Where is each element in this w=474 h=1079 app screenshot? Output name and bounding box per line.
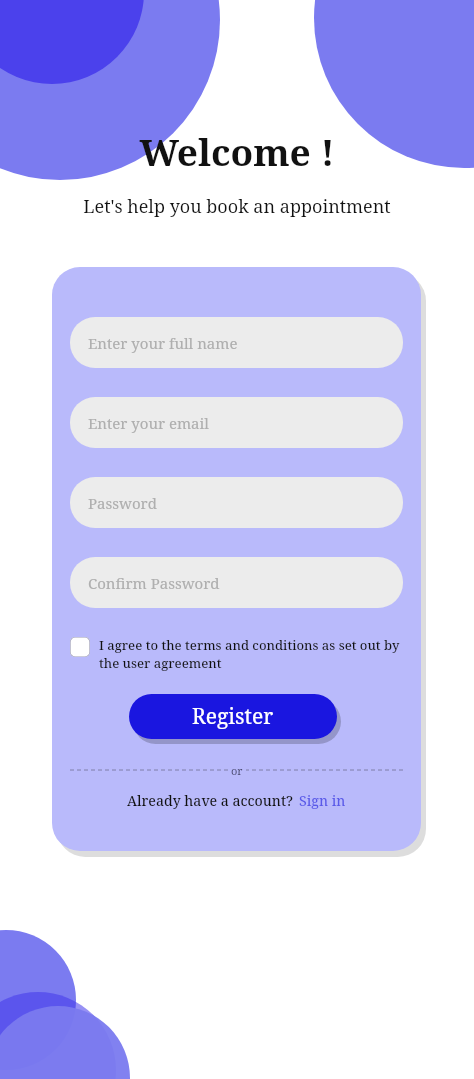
staticText: I agree to the terms and conditions as s… — [99, 636, 403, 672]
staticText: Password — [88, 493, 157, 513]
other: Agree to terms and conditions — [70, 637, 90, 657]
button[interactable]: Enter your full name — [70, 317, 403, 368]
staticText: Sign in — [299, 791, 346, 810]
staticText: Already have a account? — [127, 791, 294, 810]
staticText: Welcome ! — [139, 126, 335, 176]
button[interactable]: Register — [129, 694, 337, 739]
staticText: Enter your full name — [88, 333, 238, 353]
staticText: or — [231, 763, 243, 777]
staticText: Enter your email — [88, 413, 210, 433]
button[interactable]: Sign in — [299, 791, 346, 810]
staticText: Let's help you book an appointment — [83, 194, 391, 219]
staticText: Confirm Password — [88, 573, 220, 593]
button[interactable]: Password — [70, 477, 403, 528]
button[interactable]: Confirm Password — [70, 557, 403, 608]
staticText: Register — [192, 702, 274, 731]
button[interactable]: Agree to terms and conditions — [70, 636, 403, 672]
button[interactable]: Enter your email — [70, 397, 403, 448]
